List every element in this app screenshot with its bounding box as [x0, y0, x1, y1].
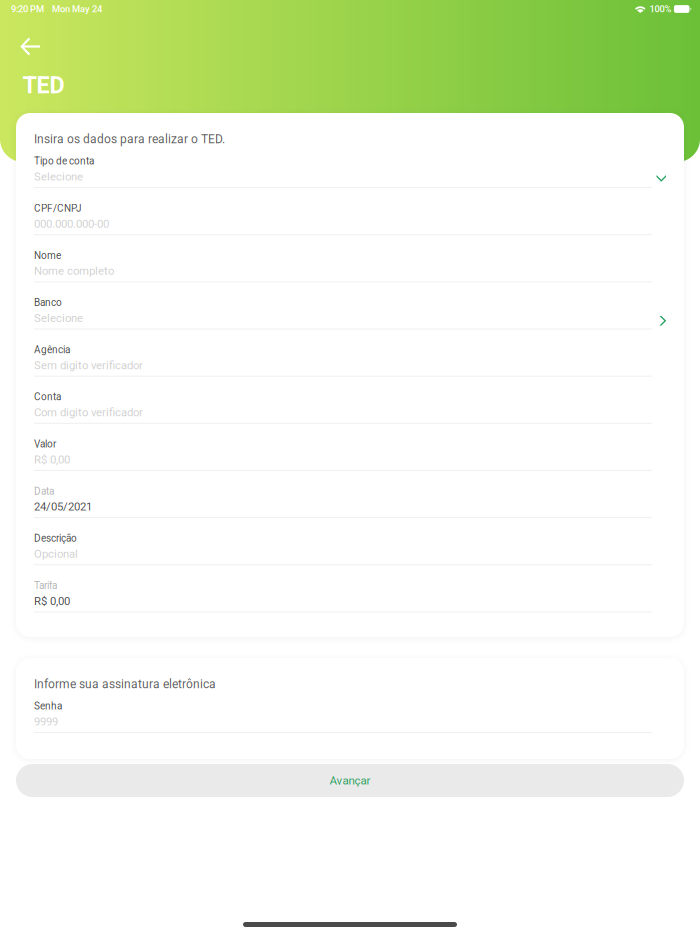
staticText: Selecione: [34, 170, 83, 183]
staticText: Informe sua assinatura eletrônica: [34, 677, 216, 691]
staticText: Insira os dados para realizar o TED.: [34, 132, 225, 146]
button[interactable]: Banco: [34, 298, 666, 346]
button[interactable]: Valor: [34, 440, 666, 487]
staticText: Selecione: [34, 311, 83, 325]
staticText: 100%: [649, 3, 671, 14]
staticText: Agência: [34, 344, 70, 356]
button[interactable]: Senha: [34, 702, 666, 749]
button[interactable]: Nome: [34, 251, 666, 298]
staticText: Opcional: [34, 547, 78, 560]
staticText: 24/05/2021: [34, 500, 92, 513]
staticText: Nome completo: [34, 264, 114, 278]
staticText: Sem digito verificador: [34, 359, 143, 372]
staticText: Conta: [34, 391, 61, 403]
staticText: 9999: [34, 715, 58, 728]
button[interactable]: Data: [34, 487, 666, 534]
staticText: 000.000.000-00: [34, 217, 109, 230]
staticText: R$ 0,00: [34, 453, 70, 466]
staticText: TED: [22, 71, 64, 99]
staticText: Data: [34, 485, 54, 497]
button[interactable]: Conta: [34, 393, 666, 440]
button[interactable]: Back: [9, 27, 51, 65]
button[interactable]: CPF/CNPJ: [34, 204, 666, 251]
staticText: Com digito verificador: [34, 406, 143, 419]
staticText: Nome: [34, 250, 61, 261]
staticText: Tarifa: [34, 580, 57, 591]
staticText: Tipo de conta: [34, 155, 94, 167]
staticText: Mon May 24: [52, 3, 102, 14]
staticText: Avançar: [329, 774, 370, 787]
button[interactable]: Tipo de conta: [34, 157, 666, 204]
staticText: Descrição: [34, 532, 77, 544]
button[interactable]: Agência: [34, 346, 666, 393]
button[interactable]: Avançar: [16, 764, 684, 797]
staticText: CPF/CNPJ: [34, 202, 82, 214]
staticText: Senha: [34, 700, 62, 712]
staticText: Valor: [34, 438, 56, 450]
button[interactable]: Descrição: [34, 534, 666, 581]
button[interactable]: Tarifa: [34, 581, 666, 628]
staticText: Banco: [34, 297, 62, 308]
staticText: 9:20 PM: [11, 3, 44, 14]
staticText: R$ 0,00: [34, 594, 70, 608]
